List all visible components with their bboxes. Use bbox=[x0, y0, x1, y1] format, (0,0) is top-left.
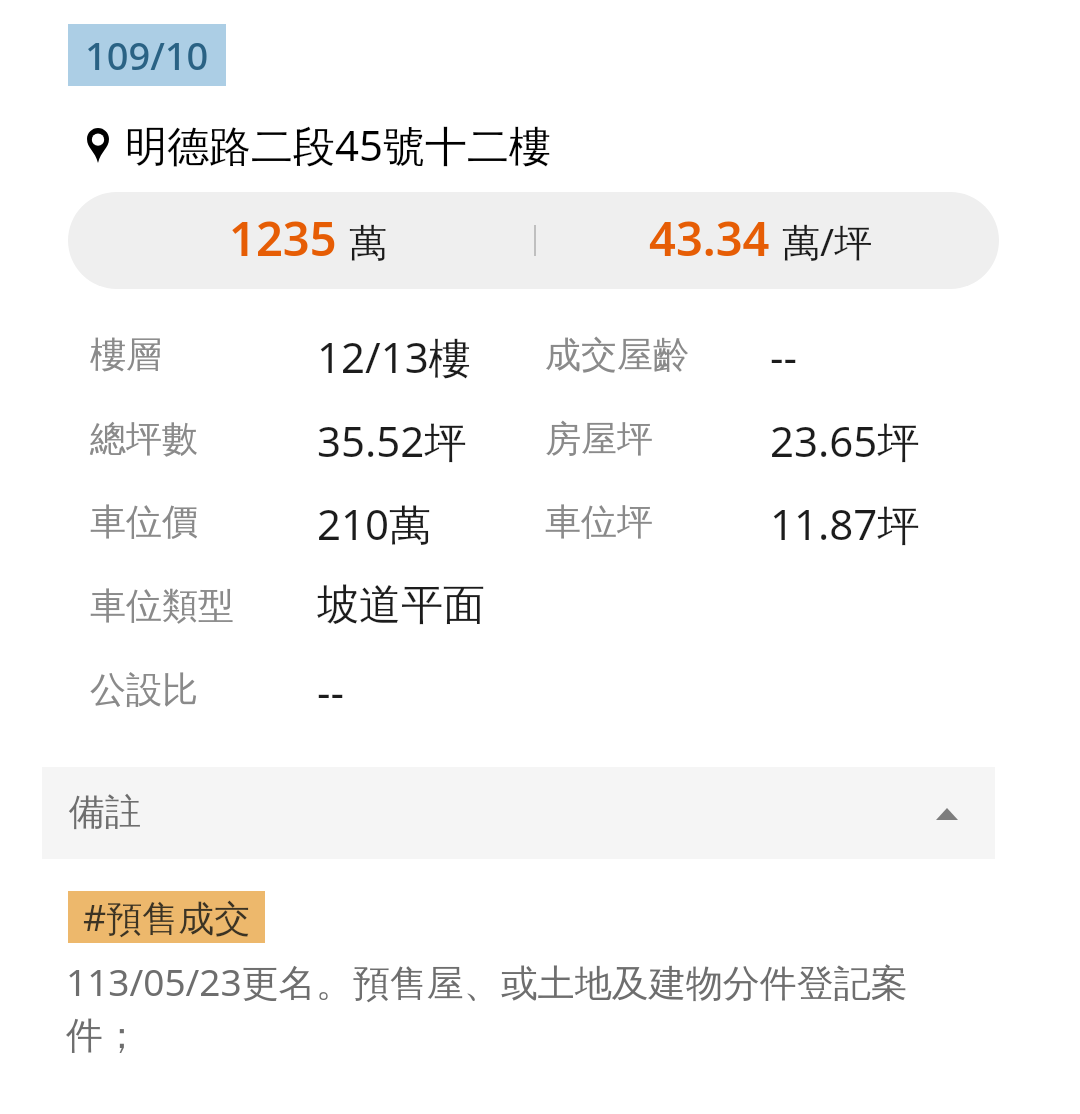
button[interactable]: 1235 bbox=[68, 192, 999, 289]
button[interactable]: 109/10 bbox=[68, 24, 226, 86]
staticText: #預售成交 bbox=[83, 893, 251, 942]
staticText: -- bbox=[317, 663, 345, 720]
staticText: 總坪數 bbox=[90, 416, 198, 461]
staticText: 公設比 bbox=[90, 667, 198, 712]
staticText: 113/05/23更名。預售屋、或土地及建物分件登記案件； bbox=[66, 956, 926, 1059]
staticText: -- bbox=[770, 328, 798, 385]
staticText: 11.87坪 bbox=[770, 495, 920, 552]
button[interactable]: 備註 bbox=[42, 767, 995, 859]
button[interactable]: Location bbox=[0, 110, 1080, 170]
staticText: 房屋坪 bbox=[545, 416, 653, 461]
staticText: 車位類型 bbox=[90, 583, 234, 628]
other: Location bbox=[87, 128, 109, 163]
staticText: 109/10 bbox=[85, 29, 209, 81]
staticText: 210萬 bbox=[317, 495, 432, 552]
staticText: 1235 bbox=[229, 206, 337, 270]
staticText: 萬 bbox=[349, 219, 387, 267]
staticText: 12/13樓 bbox=[317, 328, 471, 385]
other: Collapse remarks bbox=[936, 808, 958, 820]
button[interactable]: #預售成交 bbox=[68, 891, 265, 943]
staticText: 23.65坪 bbox=[770, 412, 920, 469]
staticText: 坡道平面 bbox=[317, 579, 485, 632]
staticText: 備註 bbox=[69, 789, 141, 834]
staticText: 車位價 bbox=[90, 499, 198, 544]
staticText: 43.34 bbox=[649, 206, 770, 270]
staticText: 35.52坪 bbox=[317, 412, 467, 469]
staticText: 車位坪 bbox=[545, 499, 653, 544]
staticText: 明德路二段45號十二樓 bbox=[125, 116, 552, 173]
staticText: 成交屋齡 bbox=[545, 332, 689, 377]
staticText: 萬/坪 bbox=[782, 215, 873, 267]
staticText: 樓層 bbox=[90, 332, 162, 377]
